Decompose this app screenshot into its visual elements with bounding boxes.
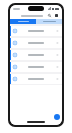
- button[interactable]: Menu: [54, 13, 59, 18]
- button[interactable]: [13, 14, 47, 18]
- button[interactable]: Search: [47, 13, 52, 18]
- button[interactable]: [10, 26, 62, 36]
- button[interactable]: Add: [54, 114, 60, 120]
- button[interactable]: [10, 74, 62, 84]
- button[interactable]: [10, 38, 62, 48]
- button[interactable]: [36, 19, 62, 24]
- button[interactable]: [10, 62, 62, 72]
- button[interactable]: [10, 50, 62, 60]
- button[interactable]: [10, 19, 36, 24]
